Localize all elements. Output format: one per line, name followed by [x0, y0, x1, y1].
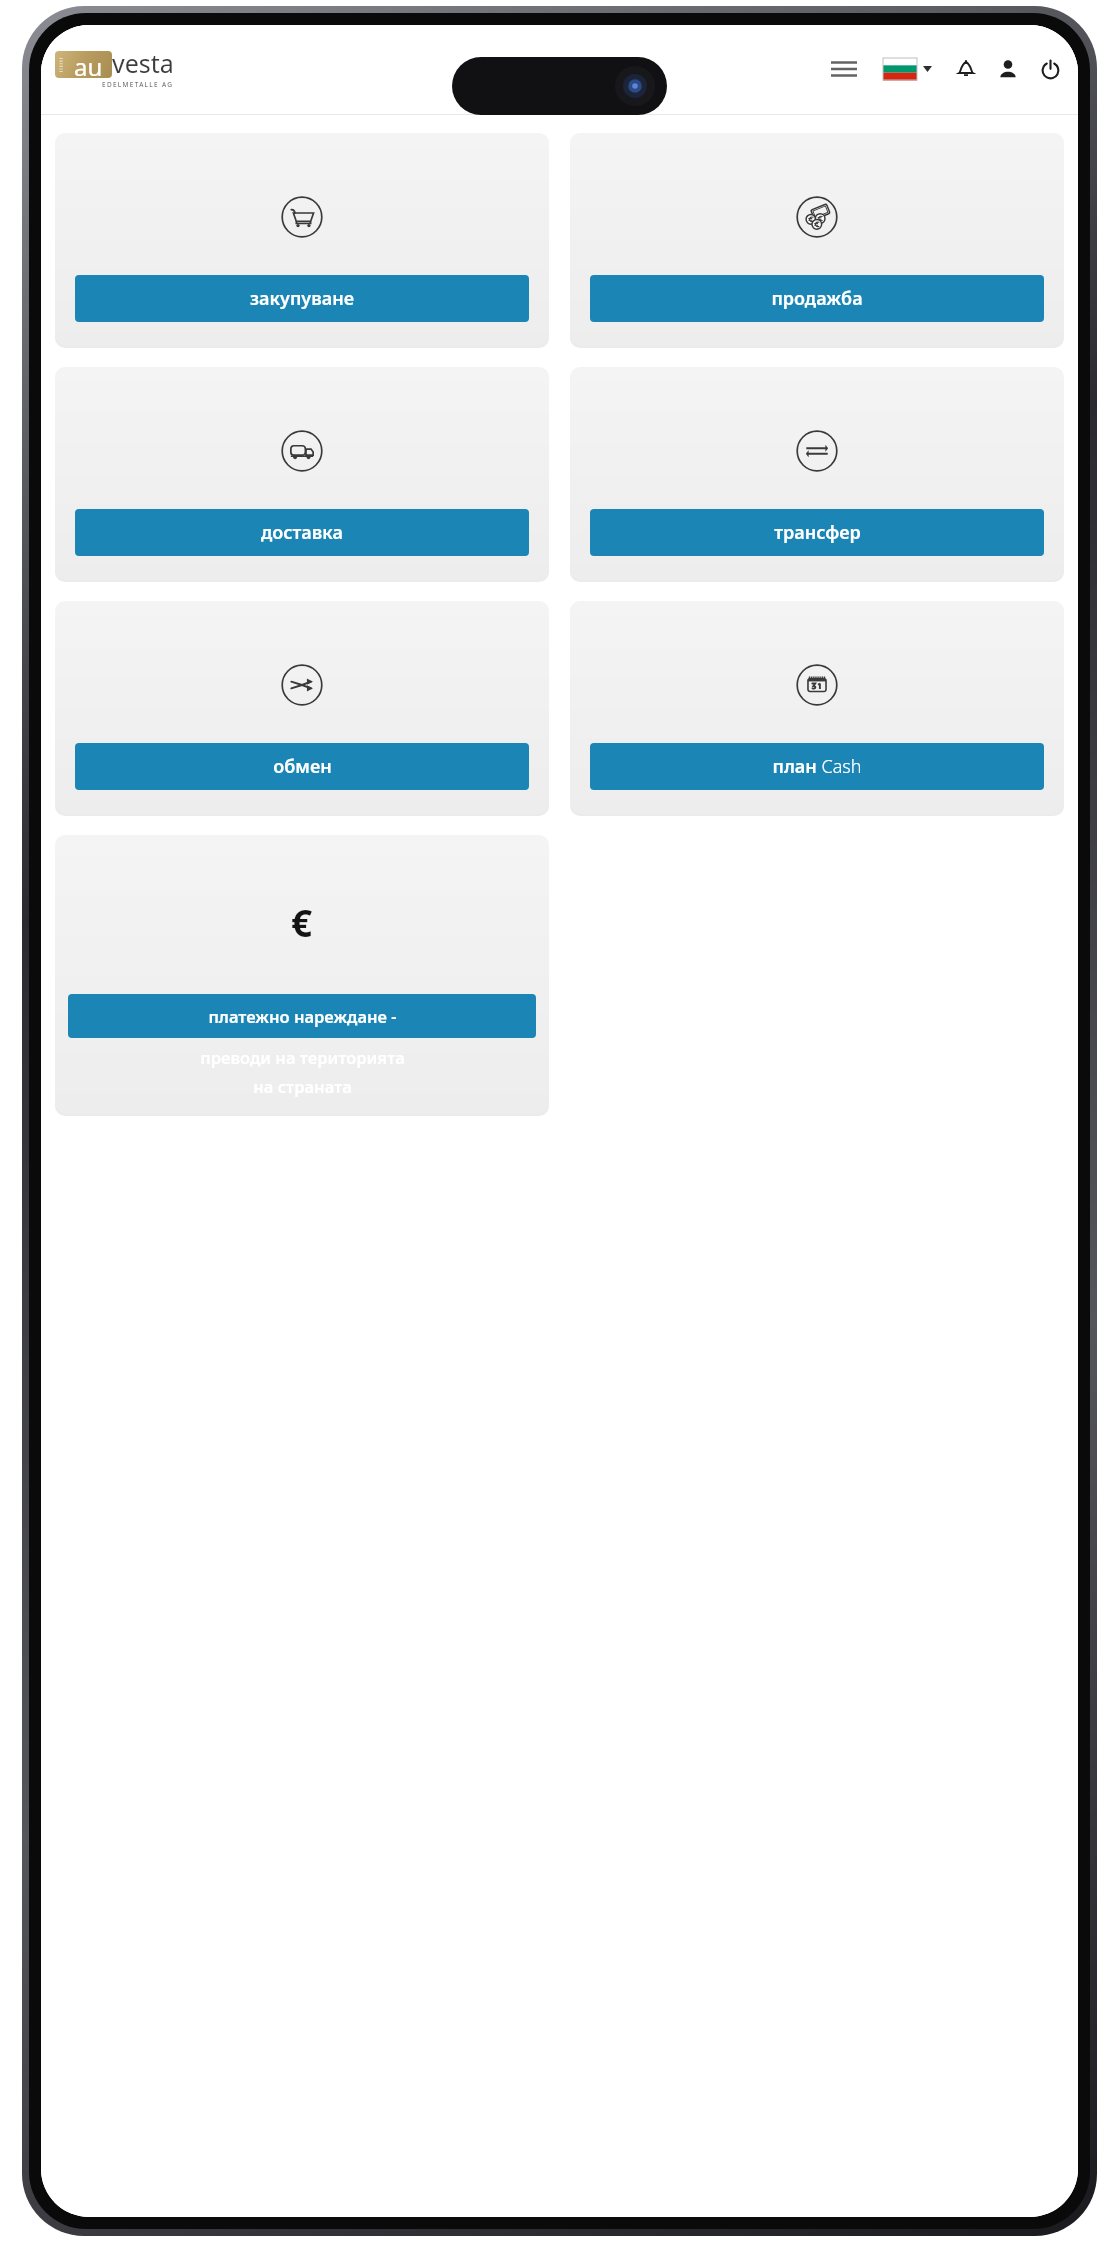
- staticText: план Cash: [772, 754, 862, 779]
- staticText: EDELMETALLE AG: [102, 80, 174, 89]
- staticText: au: [74, 51, 103, 77]
- staticText: доставка: [261, 520, 343, 545]
- staticText: на страната: [253, 1075, 352, 1097]
- button[interactable]: обмен: [75, 743, 529, 790]
- button[interactable]: Account: [990, 51, 1026, 87]
- button[interactable]: продажба: [590, 275, 1044, 322]
- staticText: трансфер: [774, 520, 861, 545]
- staticText: обмен: [273, 754, 332, 779]
- button[interactable]: закупуване: [55, 133, 549, 346]
- button[interactable]: Language: [881, 52, 934, 86]
- button[interactable]: трансфер: [590, 509, 1044, 556]
- button[interactable]: продажба: [570, 133, 1064, 346]
- button[interactable]: Notifications: [948, 51, 984, 87]
- button[interactable]: обмен: [55, 601, 549, 814]
- staticText: €: [291, 897, 313, 947]
- staticText: преводи на територията: [200, 1046, 405, 1068]
- button[interactable]: доставка: [55, 367, 549, 580]
- button[interactable]: платежно нареждане -: [68, 994, 536, 1097]
- button[interactable]: доставка: [75, 509, 529, 556]
- button[interactable]: Menu: [824, 49, 864, 89]
- button[interactable]: закупуване: [75, 275, 529, 322]
- staticText: закупуване: [250, 286, 354, 311]
- button[interactable]: трансфер: [570, 367, 1064, 580]
- staticText: vesta: [112, 46, 174, 80]
- button[interactable]: Log out: [1032, 51, 1068, 87]
- button[interactable]: €: [55, 835, 549, 1114]
- button[interactable]: план Cash: [570, 601, 1064, 814]
- staticText: продажба: [771, 286, 863, 311]
- staticText: платежно нареждане -: [208, 1005, 397, 1027]
- button[interactable]: au: [55, 47, 174, 91]
- button[interactable]: план Cash: [590, 743, 1044, 790]
